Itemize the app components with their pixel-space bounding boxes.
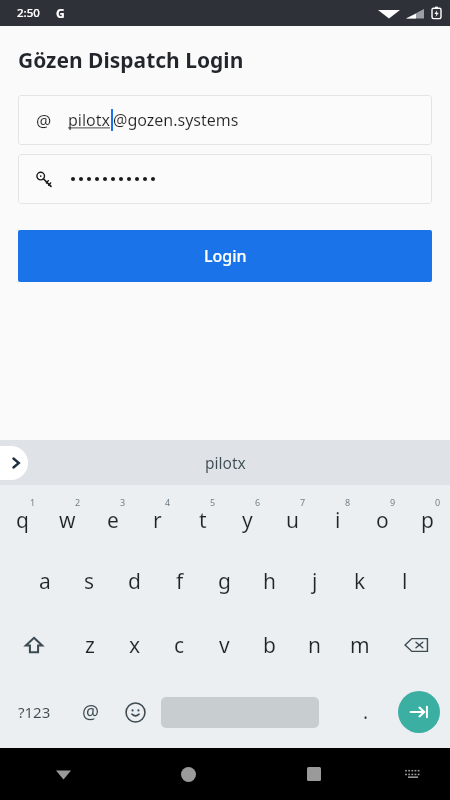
staticText: 6 [255, 496, 261, 508]
staticText: v [219, 631, 230, 660]
staticText: l [402, 567, 408, 596]
staticText: o [376, 506, 389, 535]
button[interactable]: 6 [225, 485, 270, 549]
button[interactable]: Backspace [382, 613, 450, 677]
button[interactable]: 5 [180, 485, 225, 549]
staticText: h [263, 567, 276, 596]
button[interactable]: s [67, 549, 112, 613]
button[interactable]: ?123 [0, 677, 68, 747]
button[interactable] [18, 154, 432, 204]
staticText: y [242, 506, 253, 535]
staticText: Login [204, 245, 247, 267]
staticText: g [218, 567, 231, 596]
button[interactable]: 1 [0, 485, 45, 549]
button[interactable]: b [247, 613, 292, 677]
button[interactable]: Switch keyboard [376, 748, 450, 800]
button[interactable]: l [382, 549, 427, 613]
button[interactable]: g [202, 549, 247, 613]
staticText: u [286, 506, 299, 535]
button[interactable]: z [67, 613, 112, 677]
button[interactable]: k [337, 549, 382, 613]
button[interactable]: f [157, 549, 202, 613]
staticText: 0 [435, 496, 441, 508]
staticText: @ [36, 109, 52, 132]
button[interactable]: d [112, 549, 157, 613]
staticText: @gozen.systems [113, 109, 239, 131]
button[interactable]: Login [18, 230, 432, 282]
button[interactable]: 9 [360, 485, 405, 549]
button[interactable]: Emoji [113, 677, 158, 747]
staticText: 5 [210, 496, 216, 508]
staticText: d [128, 567, 141, 596]
staticText: k [354, 567, 366, 596]
staticText: x [129, 631, 141, 660]
staticText: . [363, 699, 369, 725]
staticText: r [153, 506, 162, 535]
button[interactable]: j [292, 549, 337, 613]
button[interactable]: @ [18, 95, 432, 145]
staticText: z [85, 631, 95, 660]
staticText: 2 [75, 496, 81, 508]
button[interactable]: Expand suggestions [0, 446, 28, 480]
staticText: ?123 [18, 702, 51, 722]
button[interactable]: 4 [135, 485, 180, 549]
staticText: G [56, 5, 65, 21]
staticText: i [335, 506, 341, 535]
staticText: m [350, 631, 370, 660]
staticText: 7 [300, 496, 306, 508]
staticText: b [263, 631, 276, 660]
staticText: @ [82, 699, 100, 725]
button[interactable]: a [22, 549, 67, 613]
button[interactable]: n [292, 613, 337, 677]
staticText: n [308, 631, 321, 660]
button[interactable]: m [337, 613, 382, 677]
staticText: c [174, 631, 185, 660]
button[interactable]: Recents [251, 748, 376, 800]
button[interactable]: Space [158, 677, 344, 747]
staticText: q [16, 506, 29, 535]
staticText: 4 [165, 496, 171, 508]
staticText: w [59, 506, 76, 535]
button[interactable]: h [247, 549, 292, 613]
staticText: e [107, 506, 119, 535]
staticText: a [39, 567, 51, 596]
button[interactable]: 3 [90, 485, 135, 549]
button[interactable]: v [202, 613, 247, 677]
staticText: pilotx [205, 452, 246, 473]
staticText: t [199, 506, 207, 535]
staticText: 8 [345, 496, 351, 508]
staticText: pilotx [68, 109, 111, 131]
button[interactable]: Shift [0, 613, 67, 677]
button[interactable]: 2 [45, 485, 90, 549]
button[interactable]: c [157, 613, 202, 677]
button[interactable]: 8 [315, 485, 360, 549]
staticText: 9 [390, 496, 396, 508]
staticText: p [421, 506, 434, 535]
button[interactable]: 7 [270, 485, 315, 549]
button[interactable]: @ [68, 677, 113, 747]
button[interactable]: Back [0, 748, 126, 800]
staticText: 1 [30, 496, 36, 508]
staticText: j [312, 567, 318, 596]
button[interactable]: . [344, 677, 388, 747]
staticText: f [176, 567, 184, 596]
staticText: 3 [120, 496, 126, 508]
button[interactable]: Home [126, 748, 251, 800]
staticText: Gözen Dispatch Login [18, 46, 244, 75]
staticText: s [84, 567, 95, 596]
button[interactable]: 0 [405, 485, 450, 549]
staticText: 2:50 [17, 5, 40, 21]
button[interactable]: Enter [388, 677, 450, 747]
button[interactable]: x [112, 613, 157, 677]
